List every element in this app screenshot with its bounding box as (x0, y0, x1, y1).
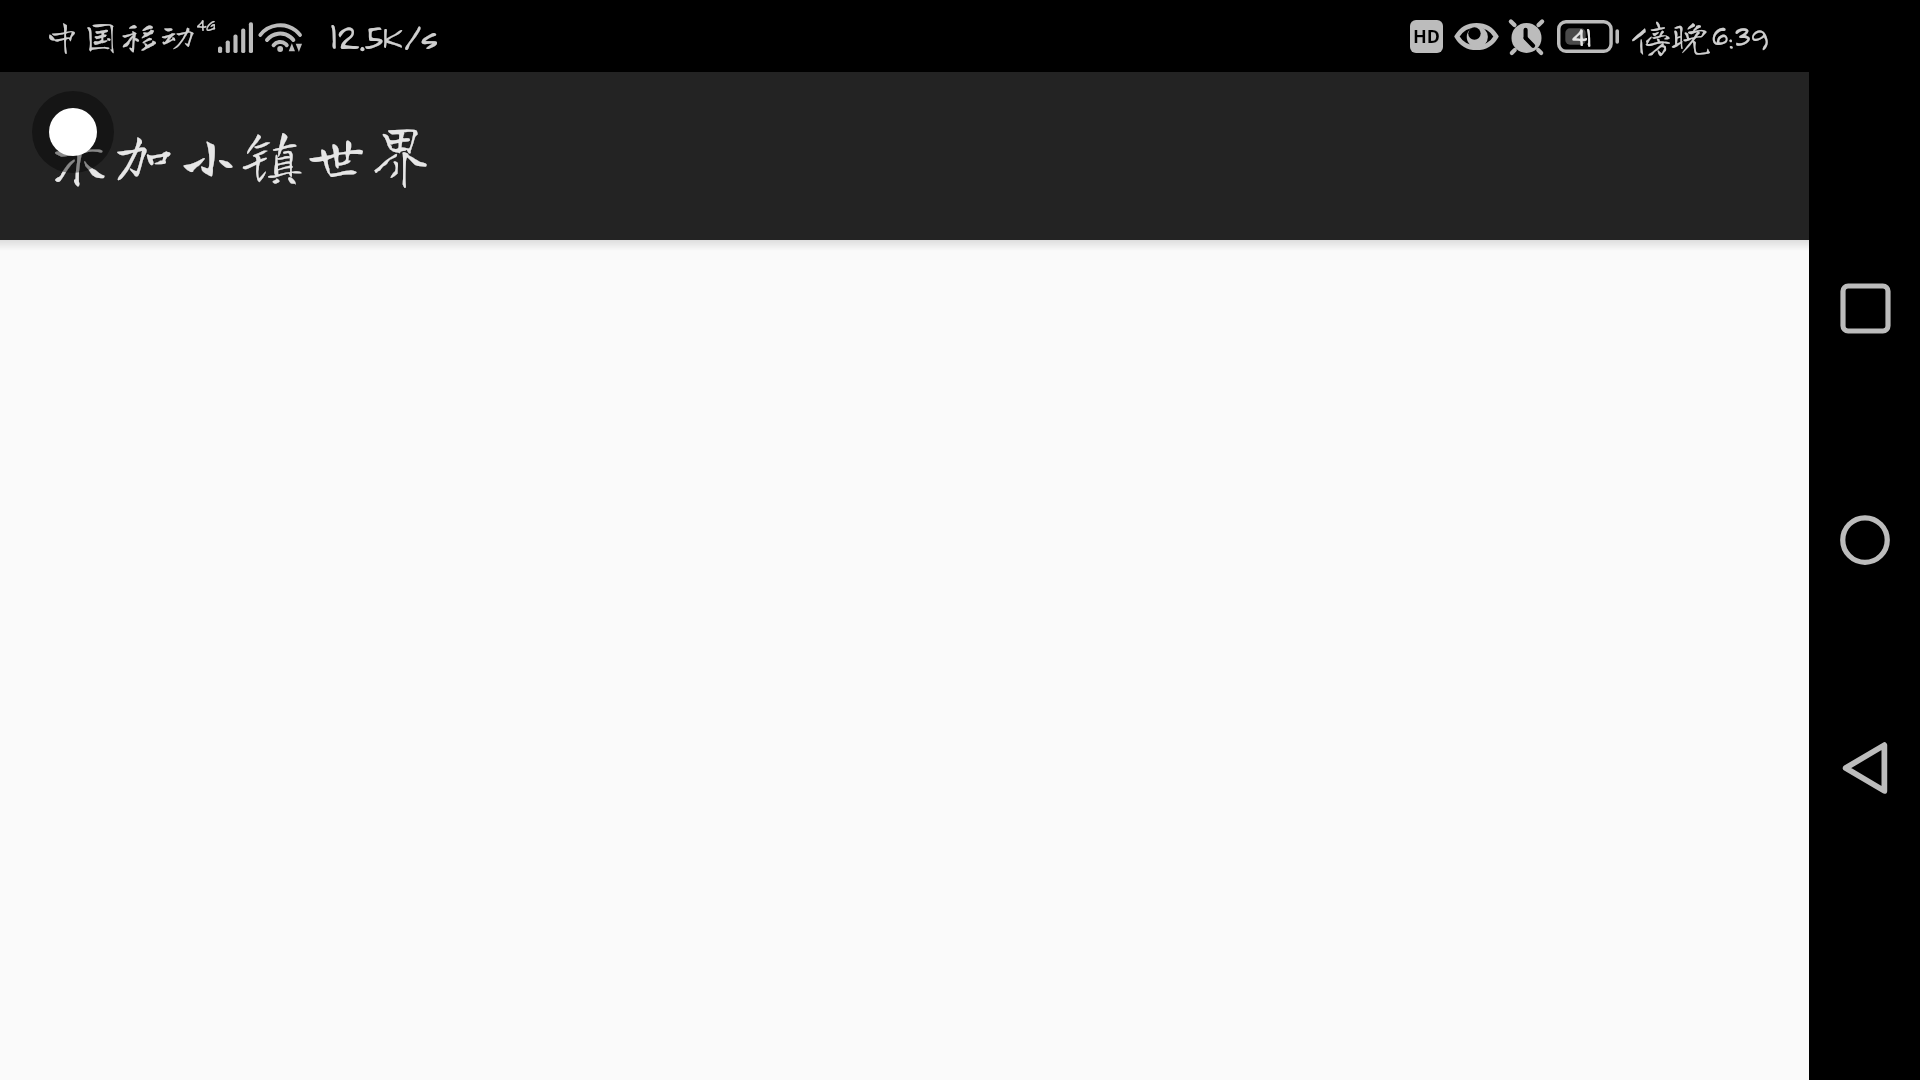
staticText: 木加小镇世界 (49, 123, 435, 184)
button[interactable]: Loading indicator (32, 91, 114, 173)
button[interactable]: Home (1820, 495, 1910, 585)
staticText: HD (1413, 24, 1440, 49)
staticText: 中国移动 (43, 17, 198, 55)
staticText: 41 (1571, 19, 1591, 52)
staticText: 4G (196, 14, 216, 36)
button[interactable]: Back (1820, 723, 1910, 813)
button[interactable]: Recents (1820, 263, 1910, 353)
staticText: 12.5K/s (329, 12, 437, 58)
staticText: 傍晚6:39 (1631, 16, 1768, 56)
